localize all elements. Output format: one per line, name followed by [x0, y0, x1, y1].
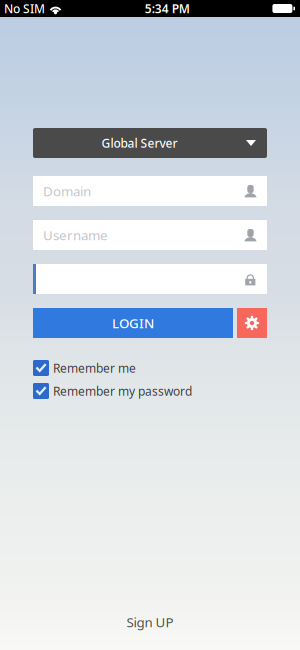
button[interactable]: Sign UP — [95, 611, 205, 633]
staticText: 5:34 PM — [145, 0, 190, 16]
staticText: Remember my password — [53, 383, 192, 399]
staticText: Username — [43, 226, 108, 244]
staticText: Remember me — [53, 360, 136, 376]
staticText: LOGIN — [112, 314, 154, 332]
staticText: Sign UP — [126, 613, 173, 631]
staticText: Domain — [43, 182, 91, 200]
button[interactable]: Settings — [237, 308, 267, 338]
button[interactable]: Global Server — [33, 128, 267, 158]
button[interactable]: LOGIN — [33, 308, 233, 338]
button[interactable]: Remember my password — [33, 383, 267, 399]
staticText: Global Server — [101, 135, 177, 151]
button[interactable]: Remember me — [33, 360, 267, 376]
staticText: No SIM — [4, 0, 45, 16]
